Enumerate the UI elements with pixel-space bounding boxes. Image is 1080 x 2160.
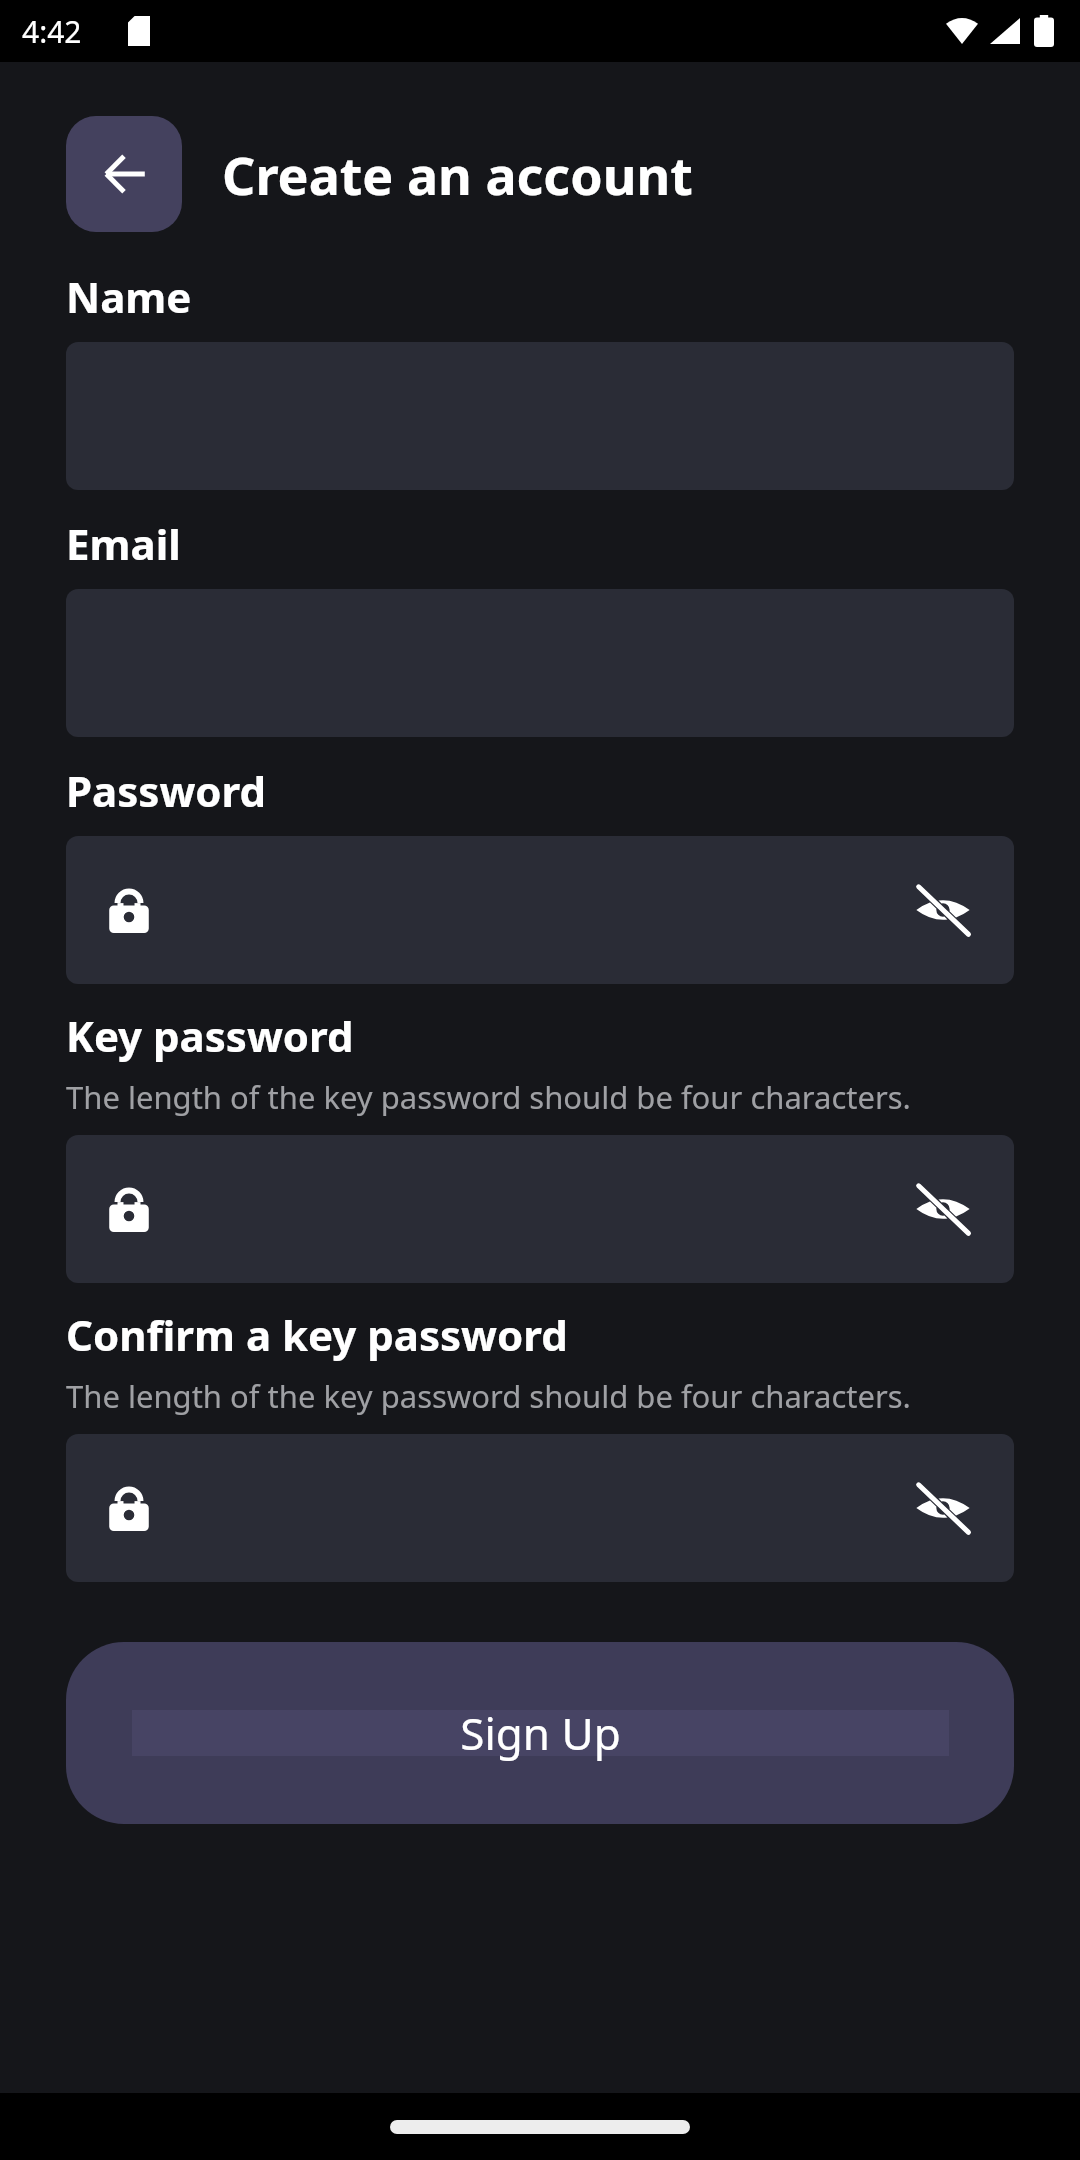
- staticText: Key password: [66, 1007, 1014, 1064]
- button[interactable]: Sign Up: [66, 1642, 1014, 1824]
- staticText: Confirm a key password: [66, 1306, 1014, 1363]
- staticText: Password: [66, 762, 1014, 819]
- button[interactable]: Show password: [904, 1469, 982, 1547]
- button[interactable]: Show password: [66, 1434, 1014, 1582]
- staticText: The length of the key password should be…: [66, 1375, 1020, 1417]
- staticText: Sign Up: [460, 1703, 621, 1763]
- staticText: Create an account: [222, 139, 693, 210]
- staticText: The length of the key password should be…: [66, 1076, 1020, 1118]
- staticText: Email: [66, 515, 1014, 572]
- button[interactable]: Show password: [66, 836, 1014, 984]
- button[interactable]: Show password: [66, 1135, 1014, 1283]
- staticText: Name: [66, 268, 1014, 325]
- staticText: 4:42: [22, 11, 82, 52]
- button[interactable]: Show password: [904, 1170, 982, 1248]
- button[interactable]: Show password: [904, 871, 982, 949]
- button[interactable]: Back: [66, 116, 182, 232]
